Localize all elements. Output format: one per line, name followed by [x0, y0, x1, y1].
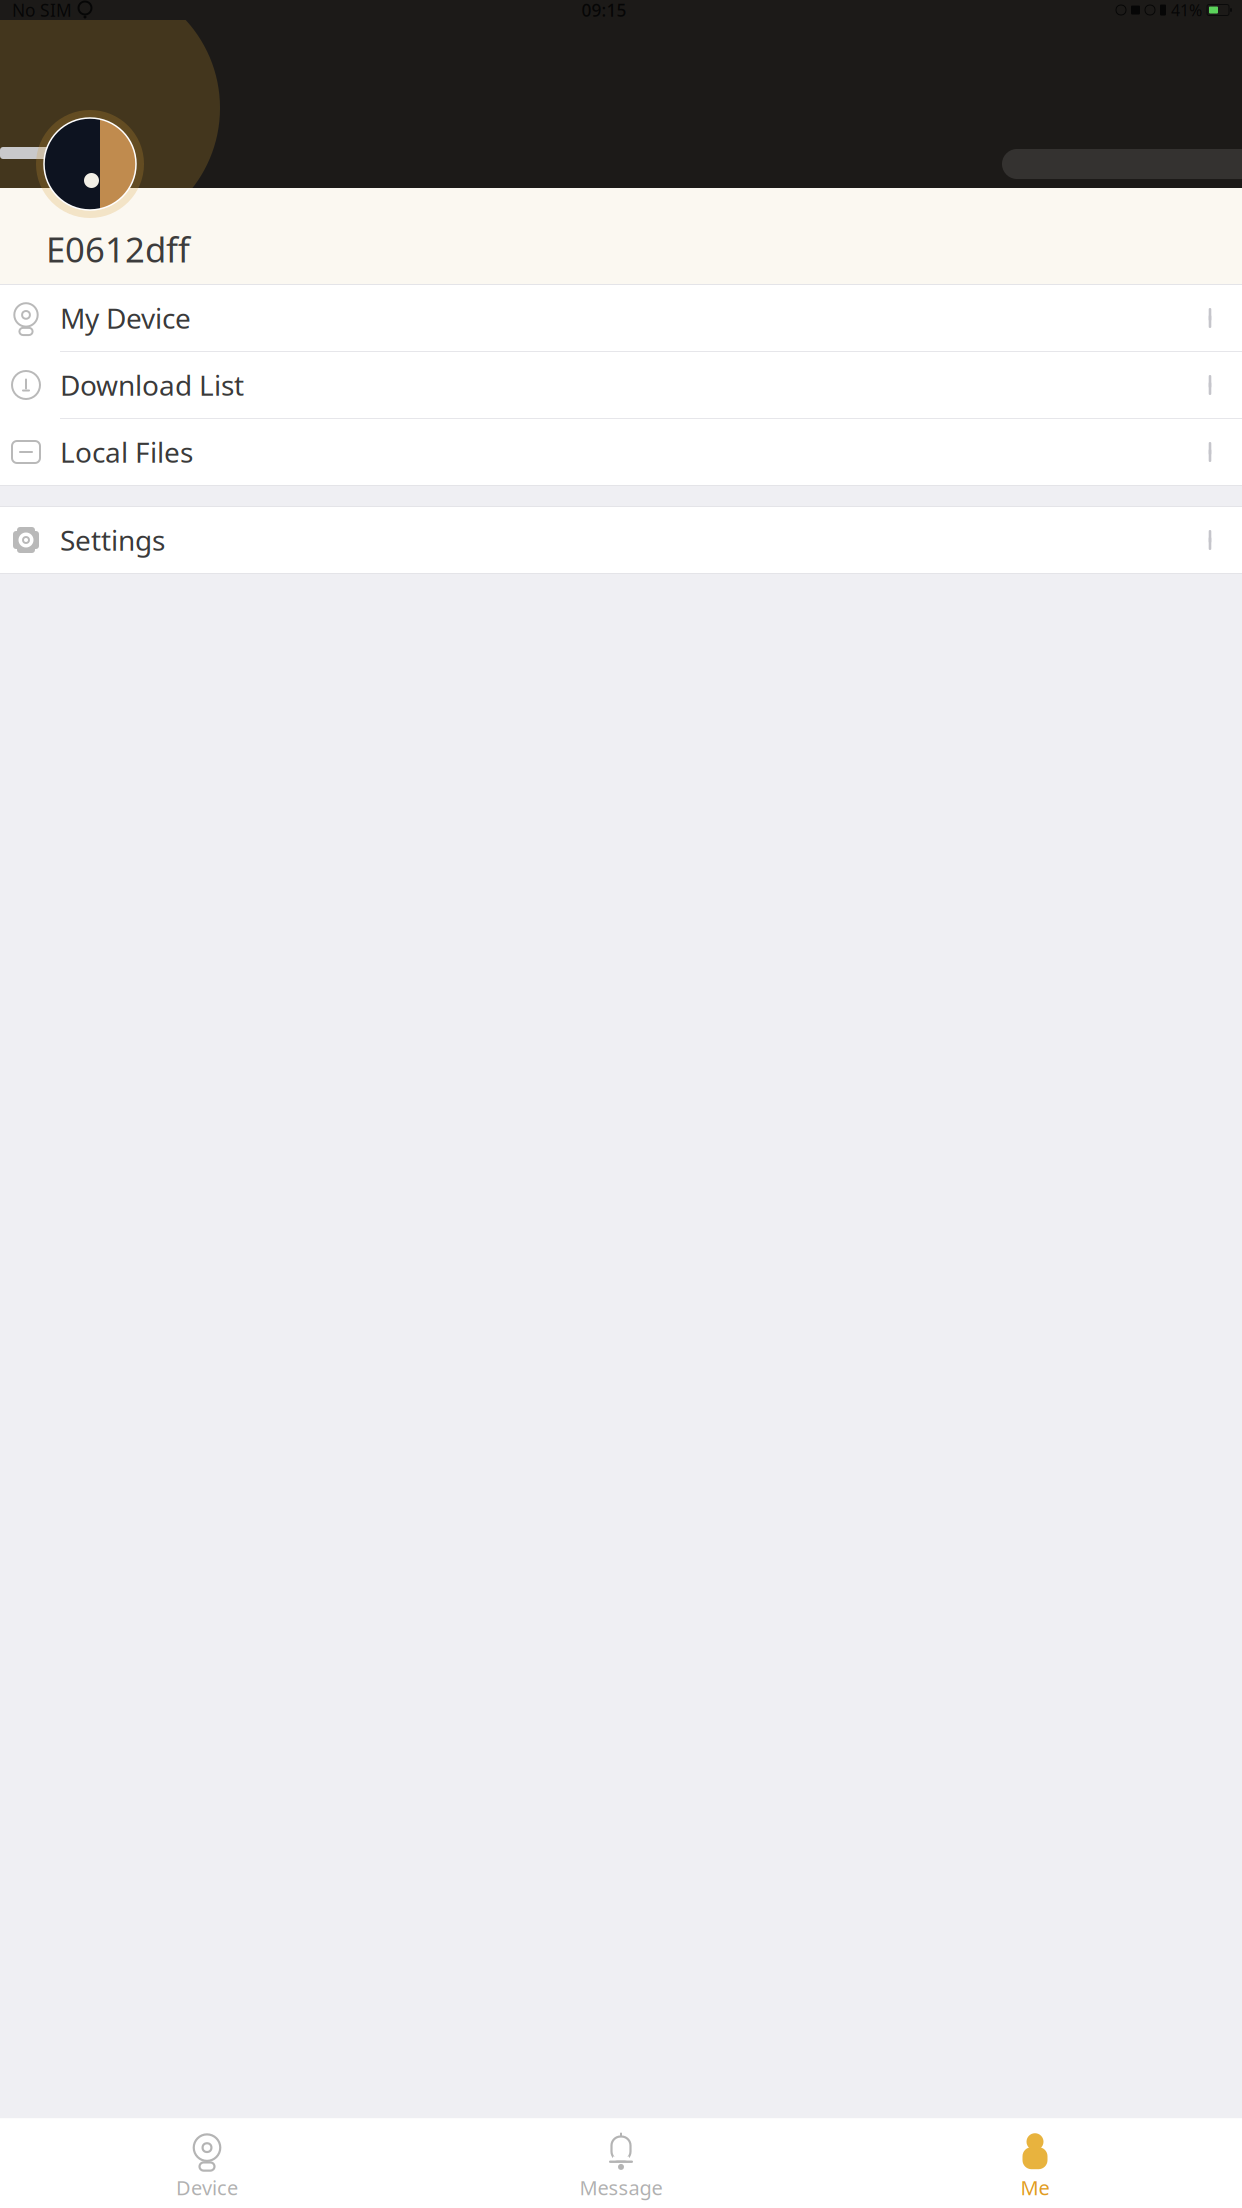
- staticText: Settings: [60, 521, 165, 559]
- staticText: My Device: [60, 299, 191, 337]
- button[interactable]: Local Files: [0, 419, 1242, 485]
- staticText: Local Files: [60, 433, 193, 471]
- button[interactable]: My Device: [0, 285, 1242, 352]
- staticText: 09:15: [581, 0, 626, 21]
- staticText: 41%: [1171, 0, 1202, 21]
- staticText: E0612dff: [46, 226, 190, 272]
- staticText: No SIM: [12, 0, 72, 21]
- button[interactable]: Message: [414, 2118, 828, 2208]
- staticText: Download List: [60, 366, 244, 404]
- button[interactable]: Device: [0, 2118, 414, 2208]
- button[interactable]: Download List: [0, 352, 1242, 419]
- button[interactable]: Settings: [0, 507, 1242, 573]
- button[interactable]: Me: [828, 2118, 1242, 2208]
- staticText: Device: [176, 2174, 238, 2201]
- staticText: Me: [1020, 2174, 1049, 2201]
- staticText: Message: [579, 2174, 662, 2201]
